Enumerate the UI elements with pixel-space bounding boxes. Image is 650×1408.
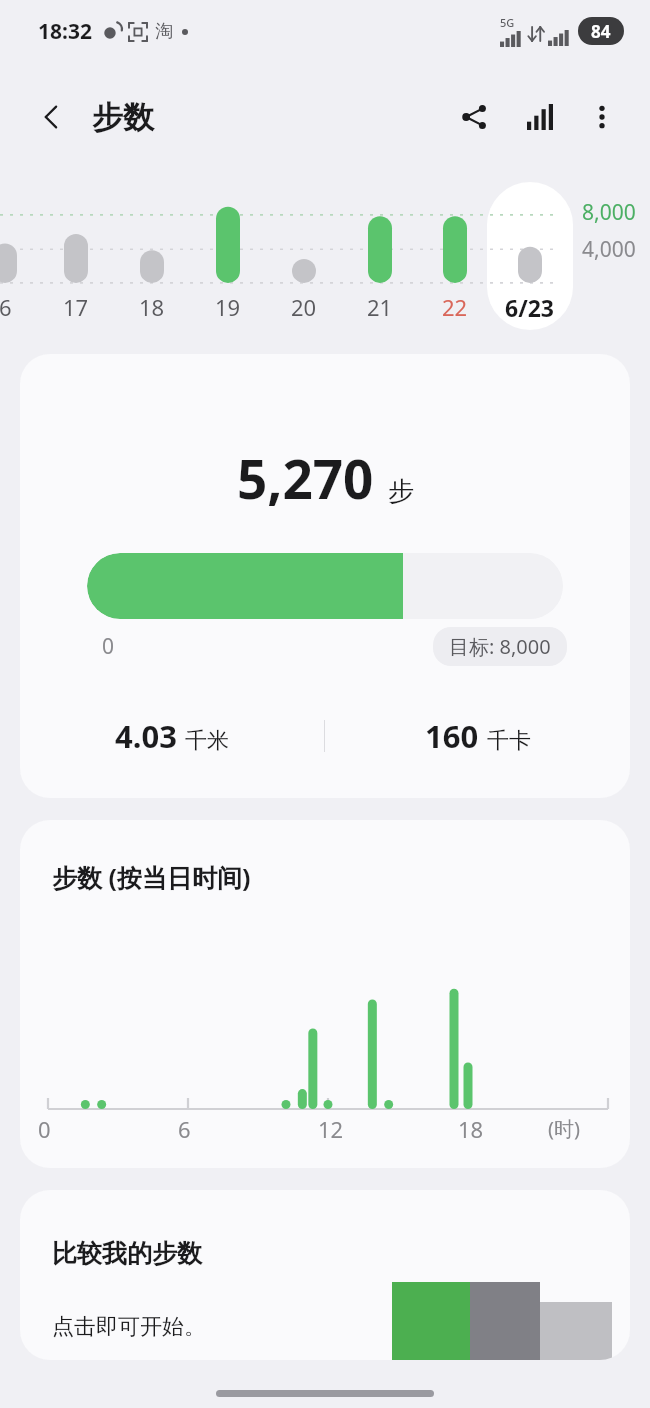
button[interactable]: 18 (114, 284, 190, 330)
staticText: 18 (139, 292, 165, 322)
button[interactable]: 20 (266, 284, 342, 330)
staticText: 千卡 (487, 727, 531, 755)
staticText: 17 (63, 292, 89, 322)
staticText: 步数 (按当日时间) (52, 860, 251, 894)
staticText: 18:32 (38, 17, 92, 46)
button[interactable]: 21 (342, 284, 418, 330)
staticText: 20 (291, 292, 317, 322)
staticText: 160 (425, 715, 479, 757)
staticText: 6/23 (505, 292, 555, 323)
button[interactable]: 19 (190, 284, 266, 330)
staticText: (时) (548, 1115, 580, 1142)
staticText: 6 (178, 1114, 191, 1144)
staticText: 12 (318, 1114, 344, 1144)
staticText: 84 (591, 20, 611, 43)
button[interactable]: 17 (38, 284, 114, 330)
staticText: 目标: 8,000 (449, 633, 551, 660)
button[interactable]: 比较我的步数 (20, 1190, 630, 1360)
button[interactable]: Share (446, 89, 502, 145)
staticText: 6 (0, 292, 12, 322)
staticText: 千米 (185, 727, 229, 755)
staticText: 比较我的步数 (52, 1238, 202, 1269)
staticText: 19 (215, 292, 241, 322)
button[interactable]: 22 (417, 284, 493, 330)
staticText: 4,000 (582, 235, 636, 264)
button[interactable]: More options (574, 89, 630, 145)
button[interactable]: Chart (512, 89, 568, 145)
staticText: 步数 (92, 98, 154, 137)
button[interactable]: 步数 (按当日时间) (20, 820, 630, 1168)
button[interactable]: 6 (0, 284, 43, 330)
staticText: 18 (458, 1114, 484, 1144)
staticText: 8,000 (582, 198, 636, 227)
button[interactable]: 5,270 (20, 354, 630, 798)
staticText: 21 (367, 292, 393, 322)
staticText: 5,270 (237, 442, 374, 514)
button[interactable]: 6/23 (492, 284, 568, 330)
staticText: 0 (38, 1114, 51, 1144)
staticText: 22 (442, 292, 468, 322)
staticText: 5G (500, 15, 515, 30)
staticText: 淘 (155, 20, 173, 43)
staticText: 步 (388, 475, 414, 508)
staticText: 点击即可开始。 (52, 1313, 206, 1341)
staticText: 4.03 (115, 715, 177, 757)
button[interactable]: Back (26, 91, 78, 143)
staticText: 0 (102, 632, 115, 661)
